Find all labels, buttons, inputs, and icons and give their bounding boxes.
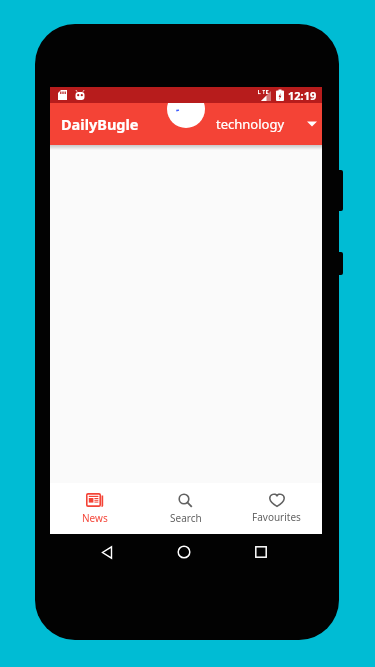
staticText: Search — [170, 511, 202, 525]
button[interactable]: Favourites — [231, 483, 322, 534]
staticText: DailyBugle — [61, 114, 139, 134]
button[interactable] — [101, 546, 114, 559]
button[interactable] — [255, 546, 267, 558]
button[interactable]: technology — [212, 111, 321, 137]
staticText: 12:19 — [288, 88, 317, 103]
staticText: News — [82, 511, 108, 525]
button[interactable]: Search — [140, 483, 231, 534]
button[interactable] — [177, 545, 191, 559]
staticText: technology — [216, 115, 285, 133]
staticText: Favourites — [252, 510, 301, 524]
button[interactable]: News — [50, 483, 140, 534]
